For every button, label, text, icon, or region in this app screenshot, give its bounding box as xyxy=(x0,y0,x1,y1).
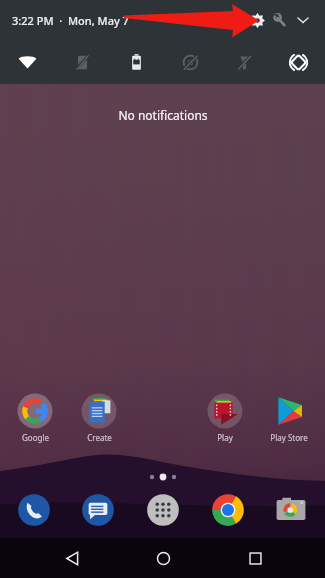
button[interactable]: Chrome xyxy=(209,491,247,529)
button[interactable]: Play xyxy=(204,392,246,441)
button[interactable]: Back xyxy=(52,538,92,578)
staticText: Play Store xyxy=(270,432,308,443)
staticText: 3:22 PM · Mon, May 7 xyxy=(12,13,129,28)
button[interactable]: Google xyxy=(14,392,56,441)
button[interactable]: Messages xyxy=(79,491,117,529)
button[interactable]: Tuner xyxy=(269,9,291,31)
staticText: Play xyxy=(217,432,233,443)
button[interactable]: Wi-Fi xyxy=(0,40,55,84)
button[interactable]: Create xyxy=(78,392,120,441)
button[interactable]: Phone xyxy=(15,491,53,529)
staticText: No notifications xyxy=(118,107,208,123)
button[interactable]: Play Store xyxy=(268,392,310,441)
button[interactable]: Auto rotate xyxy=(271,40,325,84)
button[interactable]: Settings xyxy=(245,8,269,32)
button[interactable]: Recent apps xyxy=(235,538,275,578)
staticText: Google xyxy=(22,432,49,443)
button[interactable]: Mobile data off xyxy=(163,40,217,84)
button[interactable]: Home xyxy=(143,538,183,578)
button[interactable]: Camera xyxy=(272,491,310,529)
button[interactable]: Expand xyxy=(291,8,315,32)
button[interactable]: All apps xyxy=(144,491,182,529)
button[interactable]: Do not disturb xyxy=(55,40,109,84)
button[interactable]: Flashlight off xyxy=(217,40,271,84)
staticText: Create xyxy=(87,432,112,443)
button[interactable]: Battery 99 percent xyxy=(109,40,163,84)
